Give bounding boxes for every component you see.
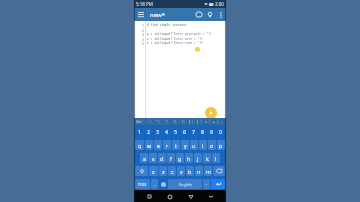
staticText: - [221,120,223,124]
button[interactable]: 0 [216,125,225,138]
button[interactable]: y [181,140,189,150]
button[interactable]: k [203,153,211,163]
staticText: o [210,142,214,149]
button[interactable]: ] [194,118,202,125]
staticText: 3 [134,32,144,37]
staticText: y [184,142,187,149]
button[interactable]: n [195,166,203,176]
staticText: v [180,168,183,175]
staticText: + [213,120,215,124]
button[interactable]: p [217,140,225,150]
staticText: u [192,142,196,149]
staticText: , [154,181,156,187]
button[interactable]: More options [215,9,226,20]
button[interactable]: ) [178,118,186,125]
button[interactable]: = [202,118,210,125]
staticText: " [156,120,158,124]
button[interactable]: a [140,153,148,163]
button[interactable]: h [185,153,193,163]
button[interactable]: Home [164,191,175,202]
button[interactable]: : [143,118,152,125]
button[interactable]: Shift [135,166,148,176]
button[interactable]: Voice input [159,179,167,189]
staticText: 0 [219,128,222,135]
button[interactable]: u [190,140,198,150]
button[interactable]: 4 [162,125,171,138]
staticText: c [171,168,174,175]
button[interactable]: 8 [198,125,207,138]
button[interactable]: . [203,179,210,189]
button[interactable]: Enter [211,179,225,189]
staticText: 4 [165,128,168,135]
button[interactable]: o [208,140,216,150]
button[interactable]: q [135,140,144,150]
button[interactable]: x [159,166,167,176]
button[interactable]: l [212,153,220,163]
button[interactable]: English [168,179,202,189]
button[interactable]: , [151,179,158,189]
button[interactable]: v [177,166,185,176]
staticText: k [206,155,209,162]
staticText: 5 [134,41,144,46]
button[interactable]: Run [205,107,217,119]
button[interactable]: c [168,166,176,176]
button[interactable]: s [149,153,157,163]
staticText: 4 [134,37,144,42]
staticText: 2 [134,28,144,33]
staticText: j [197,155,199,162]
button[interactable]: Tab [134,118,143,125]
button[interactable]: i [199,140,207,150]
button[interactable]: 3 [153,125,162,138]
button[interactable]: 6 [180,125,189,138]
button[interactable]: - [218,118,226,125]
button[interactable]: ' [161,118,170,125]
staticText: 5 [174,128,177,135]
button[interactable]: 1 [135,125,144,138]
button[interactable]: m [204,166,212,176]
button[interactable]: Navigation menu [134,8,147,21]
button[interactable]: [ [186,118,194,125]
button[interactable]: j [194,153,202,163]
staticText: new* [150,11,165,19]
button[interactable]: f [167,153,175,163]
staticText: ] [197,120,199,124]
staticText: x [162,168,165,175]
button[interactable]: d [158,153,166,163]
staticText: ?123 [138,182,147,187]
staticText: ' [165,120,166,124]
button[interactable]: ( [170,118,178,125]
staticText: e [157,142,160,149]
staticText: p [219,142,223,149]
button[interactable]: r [163,140,171,150]
button[interactable]: Back [185,191,196,202]
button[interactable]: 2 [144,125,153,138]
button[interactable]: Hints [204,9,215,20]
button[interactable]: Cursor handle [195,47,200,52]
staticText: = [205,120,207,124]
staticText: g [178,155,182,162]
button[interactable]: Recent apps [144,191,155,202]
staticText: ( [174,120,175,124]
staticText: ) [182,120,183,124]
staticText: w [147,142,152,149]
staticText: i [202,142,204,149]
staticText: f [170,155,172,162]
button[interactable]: Hide keyboard [205,191,216,202]
button[interactable]: b [186,166,194,176]
button[interactable]: z [149,166,158,176]
staticText: 3 [156,128,159,135]
button[interactable]: 7 [189,125,198,138]
button[interactable]: w [145,140,153,150]
staticText: . [206,181,208,187]
button[interactable]: + [210,118,218,125]
button[interactable]: Terminal [193,9,204,20]
button[interactable]: Backspace [213,166,225,176]
button[interactable]: t [172,140,180,150]
button[interactable]: ?123 [135,179,150,189]
button[interactable]: 9 [207,125,216,138]
button[interactable]: e [154,140,162,150]
staticText: m [206,168,211,175]
button[interactable]: " [152,118,161,125]
button[interactable]: 5 [171,125,180,138]
button[interactable]: g [176,153,184,163]
